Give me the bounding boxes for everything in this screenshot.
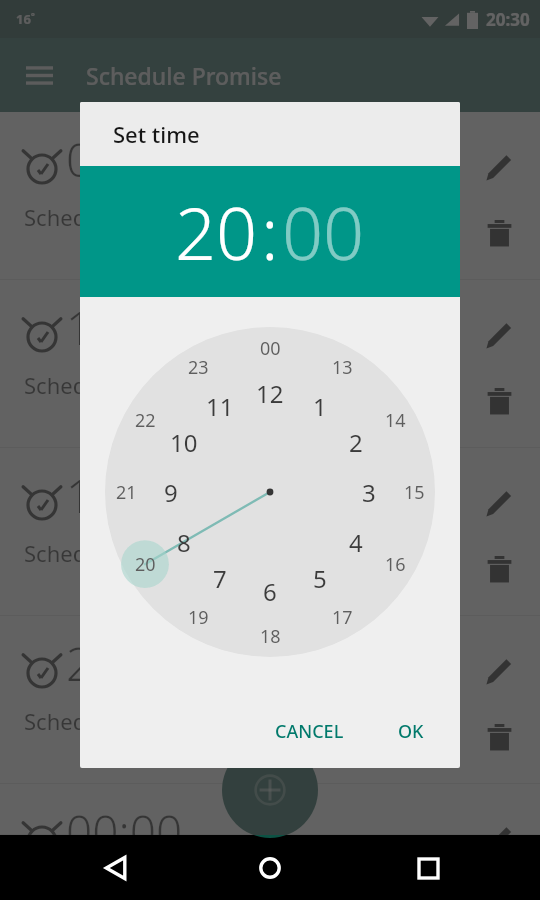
- staticText: 00:00: [66, 128, 183, 191]
- staticText: 14: [385, 408, 406, 433]
- staticText: 20: [175, 183, 258, 281]
- button[interactable]: Home: [246, 844, 294, 892]
- staticText: 00: [282, 183, 365, 281]
- staticText: 2: [349, 426, 363, 459]
- button[interactable]: Open navigation menu: [14, 50, 64, 100]
- staticText: 18: [260, 624, 281, 649]
- staticText: 16: [385, 552, 406, 577]
- staticText: 12: [256, 377, 284, 410]
- staticText: 11: [206, 390, 234, 423]
- staticText: 00:00: [66, 800, 183, 851]
- button[interactable]: Edit alarm: [474, 646, 524, 696]
- button[interactable]: Back: [92, 844, 140, 892]
- staticText: 12:00: [66, 464, 183, 527]
- staticText: 13: [332, 355, 353, 380]
- button[interactable]: Delete alarm: [474, 544, 524, 594]
- button[interactable]: 00: [282, 183, 365, 281]
- staticText: 7: [213, 562, 227, 595]
- staticText: Schedule promise: [24, 874, 209, 900]
- staticText: 9: [164, 476, 178, 509]
- staticText: 10: [170, 426, 198, 459]
- staticText: 15: [404, 480, 425, 505]
- button[interactable]: Delete alarm: [474, 208, 524, 258]
- button[interactable]: Edit alarm: [474, 142, 524, 192]
- staticText: 20:00: [66, 632, 183, 695]
- staticText: 5: [313, 562, 327, 595]
- staticText: 22: [135, 408, 156, 433]
- button[interactable]: 20: [175, 183, 258, 281]
- staticText: 20:30: [486, 8, 530, 31]
- staticText: Schedule Promise: [86, 60, 282, 91]
- staticText: 3: [362, 476, 376, 509]
- staticText: 8: [177, 526, 191, 559]
- staticText: 19: [188, 605, 209, 630]
- button[interactable]: OK: [384, 709, 438, 754]
- staticText: Schedule promise: [24, 706, 209, 736]
- staticText: Schedule promise: [24, 538, 209, 568]
- button[interactable]: 12:00: [0, 448, 540, 616]
- staticText: 00: [260, 336, 281, 361]
- button[interactable]: Edit alarm: [474, 310, 524, 360]
- staticText: OK: [398, 719, 424, 744]
- staticText: 10:00: [66, 296, 183, 359]
- button[interactable]: Edit alarm: [474, 478, 524, 528]
- button[interactable]: Add alarm: [222, 742, 318, 838]
- button[interactable]: Delete alarm: [474, 712, 524, 762]
- button[interactable]: CANCEL: [261, 709, 358, 754]
- staticText: :: [261, 183, 279, 281]
- staticText: 23: [188, 355, 209, 380]
- staticText: 4: [349, 526, 363, 559]
- staticText: CANCEL: [275, 719, 344, 744]
- staticText: 21: [116, 480, 137, 505]
- staticText: 20: [135, 552, 156, 577]
- staticText: Schedule promise: [24, 202, 209, 232]
- button[interactable]: Recent apps: [404, 844, 452, 892]
- staticText: 1: [313, 390, 327, 423]
- staticText: Schedule promise: [24, 370, 209, 400]
- button[interactable]: 00:00: [0, 112, 540, 280]
- button[interactable]: Edit alarm: [474, 814, 524, 864]
- staticText: Set time: [113, 119, 200, 149]
- button[interactable]: Delete alarm: [474, 376, 524, 426]
- staticText: 16˚: [16, 10, 36, 28]
- staticText: 17: [332, 605, 353, 630]
- button[interactable]: 00:00: [0, 784, 540, 835]
- button[interactable]: 20:00: [0, 616, 540, 784]
- button[interactable]: 00: [105, 327, 435, 657]
- staticText: 6: [263, 575, 277, 608]
- button[interactable]: 10:00: [0, 280, 540, 448]
